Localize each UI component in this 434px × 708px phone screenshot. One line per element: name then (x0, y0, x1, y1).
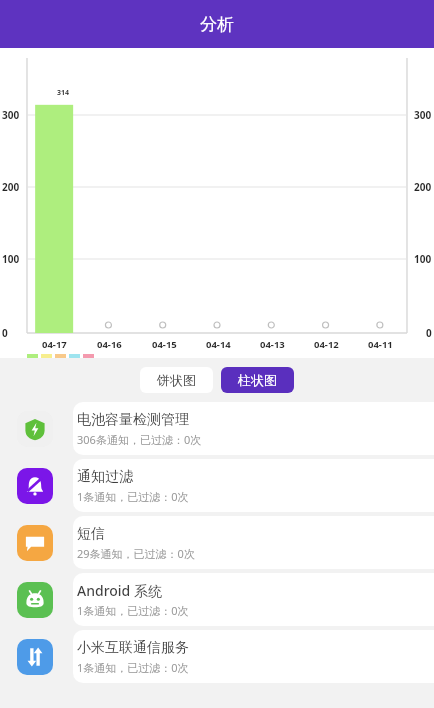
staticText: 300 (2, 108, 20, 122)
staticText: 04-14 (206, 338, 231, 351)
staticText: 04-13 (260, 338, 285, 351)
other: Notification filter (23, 474, 47, 498)
other: Android system (23, 588, 47, 612)
staticText: 1条通知，已过滤：0次 (77, 660, 189, 675)
button[interactable]: Notification filter (0, 459, 434, 512)
staticText: 短信 (77, 525, 105, 543)
staticText: 200 (2, 180, 20, 194)
button[interactable]: 饼状图 (140, 367, 213, 393)
staticText: 04-16 (97, 338, 122, 351)
button[interactable]: Android system (0, 573, 434, 626)
button[interactable]: Battery capacity monitor (0, 402, 434, 455)
staticText: 04-11 (368, 338, 393, 351)
staticText: 04-15 (152, 338, 177, 351)
staticText: 04-17 (42, 338, 67, 351)
staticText: 饼状图 (157, 372, 196, 388)
staticText: 电池容量检测管理 (77, 411, 189, 429)
other: Messages (23, 531, 47, 555)
staticText: 100 (414, 252, 432, 266)
staticText: 300 (414, 108, 432, 122)
staticText: 通知过滤 (77, 468, 133, 486)
other: Mi connectivity service (23, 645, 47, 669)
staticText: 0 (2, 326, 8, 340)
staticText: Android 系统 (77, 581, 162, 600)
staticText: 29条通知，已过滤：0次 (77, 546, 195, 561)
staticText: 100 (2, 252, 20, 266)
staticText: 小米互联通信服务 (77, 639, 189, 657)
staticText: 200 (414, 180, 432, 194)
staticText: 306条通知，已过滤：0次 (77, 432, 202, 447)
staticText: 0 (426, 326, 432, 340)
button[interactable]: Mi connectivity service (0, 630, 434, 683)
staticText: 柱状图 (238, 372, 277, 388)
staticText: 04-12 (314, 338, 339, 351)
other: Battery capacity monitor (23, 417, 47, 441)
button[interactable]: Messages (0, 516, 434, 569)
staticText: 314 (57, 88, 70, 98)
staticText: 1条通知，已过滤：0次 (77, 603, 189, 618)
staticText: 分析 (200, 14, 234, 35)
button[interactable]: 柱状图 (221, 367, 294, 393)
staticText: 1条通知，已过滤：0次 (77, 489, 189, 504)
